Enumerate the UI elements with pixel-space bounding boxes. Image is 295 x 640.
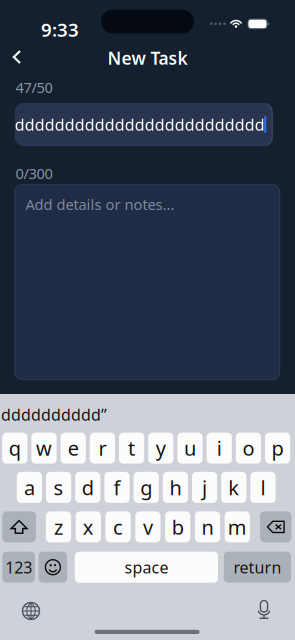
button[interactable]: return <box>224 552 291 583</box>
staticText: o <box>242 435 254 461</box>
button[interactable]: p <box>265 433 290 464</box>
button[interactable]: Shift <box>2 511 36 542</box>
staticText: 9:33 <box>41 17 79 42</box>
staticText: 47/50 <box>15 77 52 97</box>
button[interactable]: m <box>225 511 250 542</box>
staticText: i <box>217 435 222 461</box>
button[interactable]: 123 <box>2 552 35 583</box>
staticText: k <box>228 474 239 501</box>
button[interactable]: s <box>46 472 71 503</box>
staticText: 0/300 <box>15 163 52 183</box>
staticText: s <box>54 474 64 501</box>
staticText: e <box>68 435 79 461</box>
button[interactable]: e <box>61 433 86 464</box>
staticText: a <box>24 474 35 501</box>
button[interactable]: h <box>163 472 188 503</box>
button[interactable]: w <box>31 433 57 464</box>
button[interactable]: space <box>75 552 218 583</box>
button[interactable]: k <box>221 472 246 503</box>
staticText: n <box>201 514 213 540</box>
button[interactable]: v <box>135 511 160 542</box>
button[interactable]: i <box>207 433 232 464</box>
button[interactable]: d <box>75 472 100 503</box>
staticText: j <box>202 474 207 501</box>
staticText: Add details or notes... <box>25 194 174 214</box>
staticText: p <box>272 435 284 461</box>
button[interactable]: r <box>90 433 115 464</box>
staticText: g <box>140 474 152 501</box>
button[interactable]: Dictate <box>251 597 277 623</box>
staticText: h <box>169 474 181 501</box>
button[interactable]: Next keyboard <box>16 598 46 624</box>
staticText: q <box>9 435 21 461</box>
staticText: m <box>228 514 247 540</box>
button[interactable]: t <box>119 433 144 464</box>
staticText: ddddddddddddddddddddddddd <box>15 114 265 135</box>
staticText: return <box>233 557 281 578</box>
button[interactable]: x <box>76 511 101 542</box>
button[interactable]: Back <box>0 42 34 72</box>
button[interactable]: f <box>104 472 130 503</box>
staticText: ddddddddddd” <box>0 404 107 425</box>
staticText: d <box>82 474 94 501</box>
staticText: 123 <box>5 557 32 578</box>
button[interactable]: j <box>192 472 217 503</box>
button[interactable]: z <box>46 511 71 542</box>
staticText: c <box>113 514 123 540</box>
button[interactable]: n <box>195 511 220 542</box>
staticText: f <box>113 474 120 501</box>
staticText: t <box>128 435 135 461</box>
button[interactable]: Delete <box>260 511 291 542</box>
button[interactable]: q <box>2 433 27 464</box>
button[interactable]: g <box>134 472 159 503</box>
staticText: space <box>124 557 168 578</box>
button[interactable]: b <box>165 511 190 542</box>
staticText: b <box>172 514 184 540</box>
staticText: w <box>36 435 52 461</box>
staticText: z <box>54 514 63 540</box>
staticText: y <box>156 435 166 461</box>
staticText: x <box>83 514 94 540</box>
button[interactable]: o <box>236 433 261 464</box>
button[interactable]: c <box>105 511 131 542</box>
button[interactable]: Emoji <box>39 552 67 583</box>
button[interactable]: y <box>148 433 173 464</box>
staticText: u <box>184 435 196 461</box>
staticText: v <box>143 514 153 540</box>
staticText: New Task <box>107 46 187 69</box>
button[interactable]: l <box>250 472 276 503</box>
staticText: l <box>260 474 265 501</box>
staticText: r <box>98 435 106 461</box>
button[interactable]: a <box>17 472 42 503</box>
button[interactable]: u <box>177 433 203 464</box>
